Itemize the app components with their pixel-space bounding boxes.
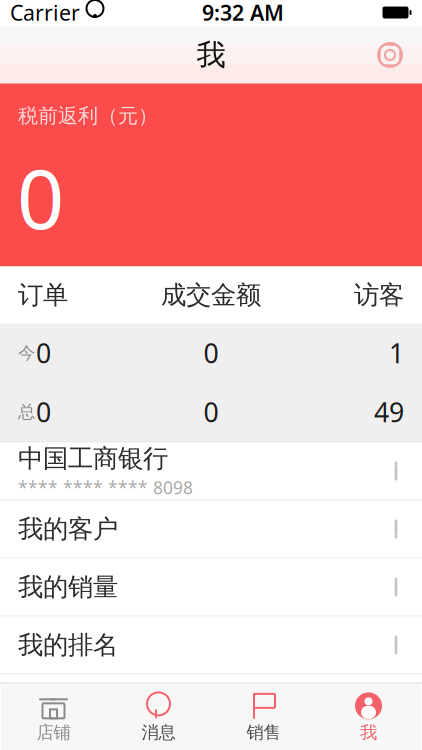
staticText: 0 — [36, 335, 51, 371]
staticText: **** **** **** 8098 — [18, 476, 193, 499]
button[interactable]: 店铺 — [1, 686, 106, 748]
button[interactable]: 中国工商银行 — [0, 442, 422, 500]
staticText: 税前返利（元） — [18, 103, 158, 128]
button[interactable]: 我的销量 — [0, 558, 422, 616]
staticText: 49 — [374, 394, 404, 430]
staticText: 我 — [360, 722, 377, 743]
staticText: 我的排名 — [18, 629, 118, 660]
staticText: 0 — [203, 394, 218, 430]
staticText: 成交金额 — [161, 279, 261, 310]
staticText: 1 — [389, 335, 404, 371]
staticText: 订单 — [18, 279, 68, 310]
button[interactable]: 我的排名 — [0, 616, 422, 674]
button[interactable]: Settings — [364, 31, 416, 79]
staticText: 0 — [203, 335, 218, 371]
button[interactable]: 我的客户 — [0, 500, 422, 558]
staticText: 总 — [18, 401, 35, 423]
staticText: 9:32 AM — [202, 0, 284, 27]
staticText: 销售 — [246, 722, 280, 743]
staticText: 今 — [18, 342, 35, 364]
staticText: 访客 — [354, 279, 404, 310]
button[interactable]: 我 — [316, 686, 421, 748]
staticText: Carrier — [10, 0, 80, 27]
staticText: 中国工商银行 — [18, 443, 168, 474]
staticText: 我的客户 — [18, 513, 118, 544]
staticText: 0 — [17, 142, 64, 252]
staticText: 店铺 — [36, 722, 70, 743]
button[interactable]: 销售 — [211, 686, 316, 748]
staticText: 我 — [196, 37, 225, 73]
button[interactable]: 消息 — [106, 686, 211, 748]
staticText: 0 — [36, 394, 51, 430]
staticText: 消息 — [141, 722, 175, 743]
staticText: 我的销量 — [18, 571, 118, 602]
